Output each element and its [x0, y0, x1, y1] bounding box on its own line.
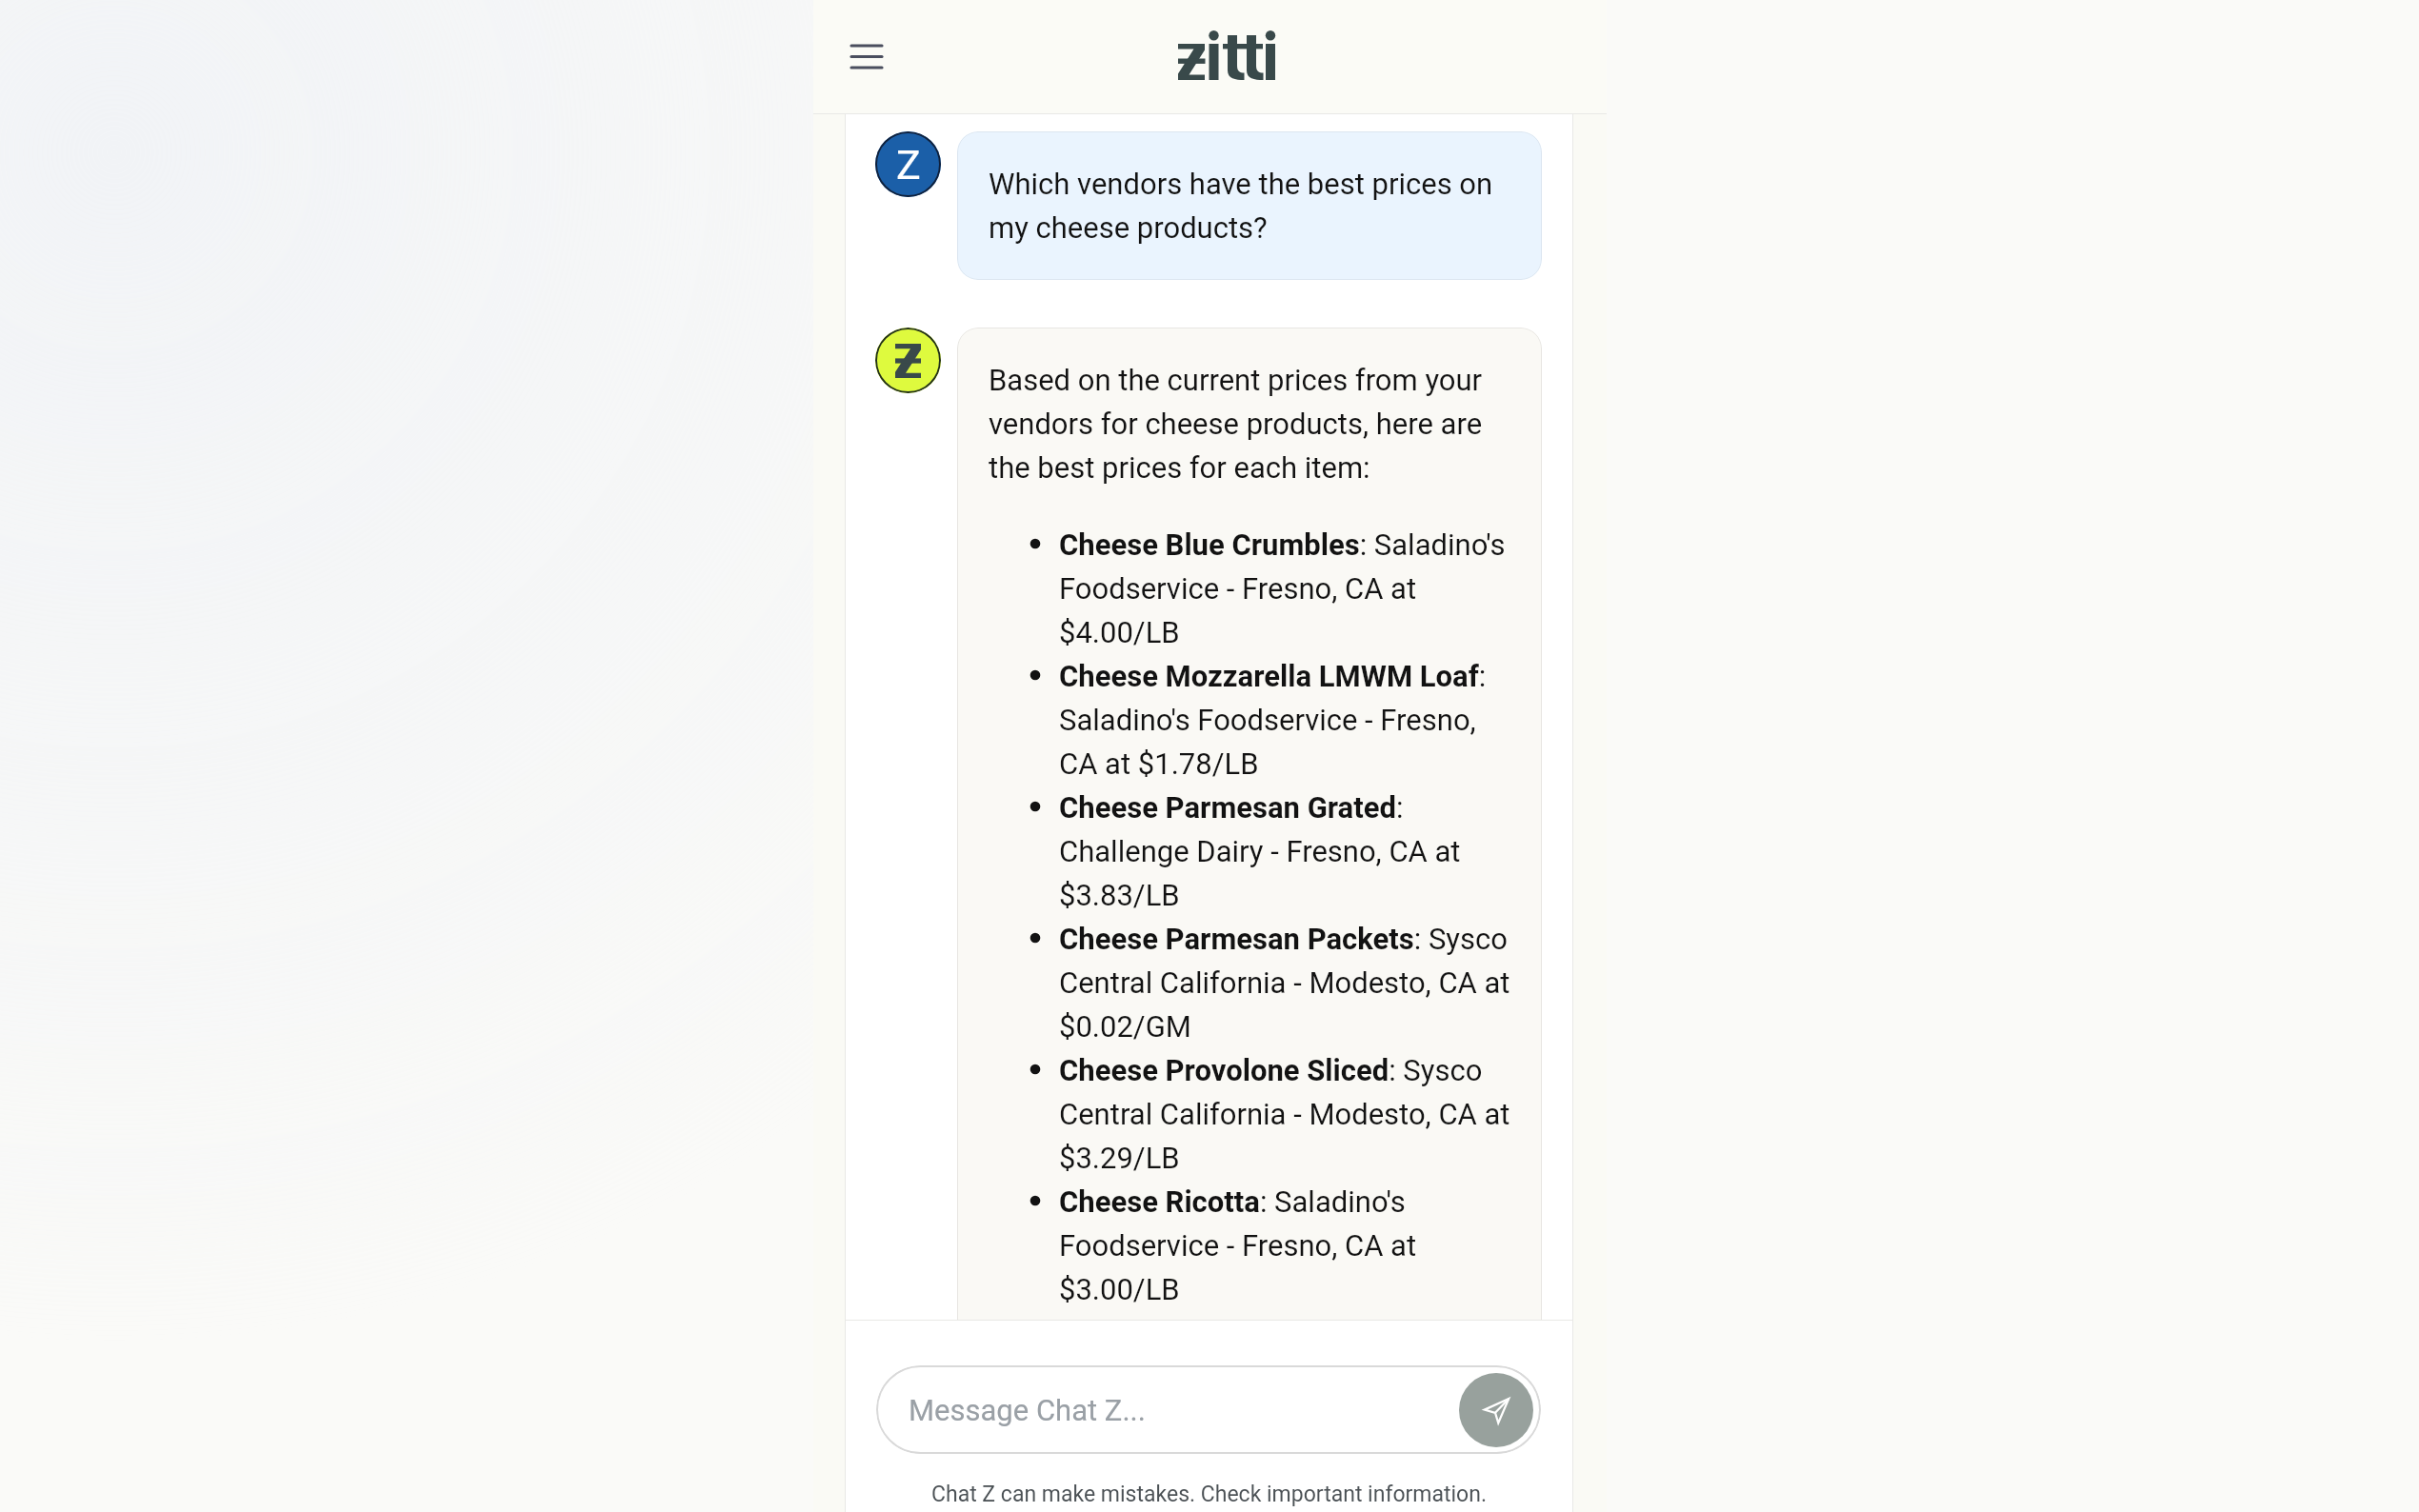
staticText: Foodservice - Fresno, CA at — [1059, 1228, 1417, 1263]
staticText: Chat Z can make mistakes. Check importan… — [846, 1482, 1572, 1507]
staticText: Cheese Parmesan Packets: Sysco — [1059, 922, 1508, 956]
staticText: Cheese Mozzarella LMWM Loaf: — [1059, 659, 1487, 693]
staticText: Based on the current prices from your — [989, 363, 1483, 397]
button[interactable]: Message Chat Z... — [876, 1365, 1541, 1454]
staticText: Z — [896, 141, 921, 189]
staticText: Cheese Blue Crumbles: Saladino's — [1059, 527, 1506, 562]
staticText: vendors for cheese products, here are — [989, 407, 1483, 441]
staticText: Cheese Parmesan Grated: — [1059, 790, 1404, 825]
staticText: Foodservice - Fresno, CA at — [1059, 571, 1417, 606]
staticText: $0.02/GM — [1059, 1009, 1191, 1044]
staticText: Challenge Dairy - Fresno, CA at — [1059, 834, 1461, 868]
button[interactable]: Menu — [830, 28, 890, 87]
staticText: CA at $1.78/LB — [1059, 746, 1259, 781]
staticText: Message Chat Z... — [909, 1393, 1459, 1427]
staticText: Central California - Modesto, CA at — [1059, 965, 1510, 1000]
staticText: the best prices for each item: — [989, 450, 1370, 485]
button[interactable]: Send message — [1459, 1373, 1533, 1447]
staticText: Cheese Provolone Sliced: Sysco — [1059, 1053, 1483, 1087]
staticText: Saladino's Foodservice - Fresno, — [1059, 703, 1476, 737]
staticText: Central California - Modesto, CA at — [1059, 1097, 1510, 1131]
staticText: $3.00/LB — [1059, 1272, 1180, 1306]
staticText: $4.00/LB — [1059, 615, 1180, 649]
staticText: $3.29/LB — [1059, 1141, 1180, 1175]
staticText: my cheese products? — [989, 210, 1268, 245]
staticText: $3.83/LB — [1059, 878, 1180, 912]
staticText: Cheese Ricotta: Saladino's — [1059, 1184, 1406, 1219]
staticText: Which vendors have the best prices on — [989, 167, 1493, 201]
